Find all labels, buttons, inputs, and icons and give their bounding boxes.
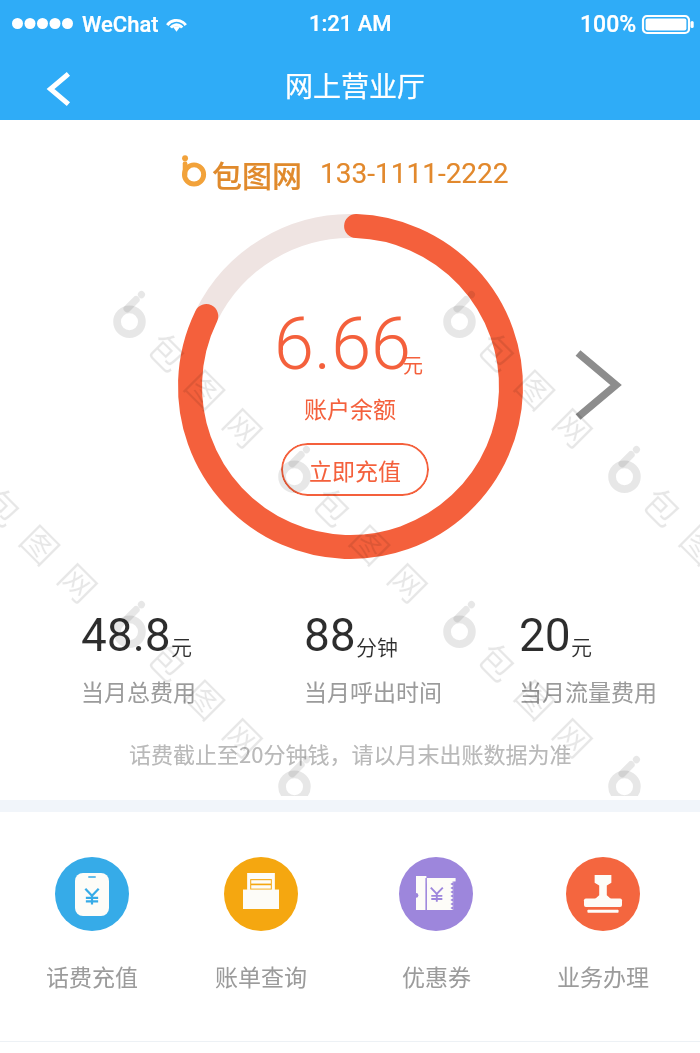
staticText: 包 (470, 319, 530, 379)
staticText: 图 (178, 667, 238, 727)
staticText: 88 (304, 608, 356, 662)
staticText: 包 (635, 784, 695, 796)
staticText: 话费截止至20分钟钱，请以月末出账数据为准 (129, 737, 572, 769)
staticText: 图 (178, 357, 238, 417)
button[interactable]: 立即充值 (281, 443, 429, 496)
staticText: 当月呼出时间 (304, 674, 442, 707)
staticText: 网 (216, 395, 276, 455)
staticText: 包 (470, 629, 530, 689)
staticText: WeChat (82, 12, 159, 34)
staticText: 包 (305, 784, 365, 796)
staticText: 包 (140, 629, 200, 689)
button[interactable]: 返回 (32, 63, 84, 115)
staticText: 1:21 AM (309, 11, 392, 37)
button[interactable]: 账单查询 (201, 857, 321, 992)
staticText: 包图网 (212, 152, 302, 195)
staticText: 账户余额 (304, 391, 396, 424)
staticText: 100% (580, 11, 637, 33)
staticText: 48.8 (81, 608, 171, 662)
staticText: 网 (546, 705, 606, 765)
staticText: 网上营业厅 (285, 65, 426, 106)
button[interactable]: 优惠券 (376, 857, 496, 992)
staticText: 元 (171, 631, 192, 661)
staticText: 分钟 (356, 631, 398, 661)
staticText: 20 (519, 608, 571, 662)
staticText: 元 (571, 631, 592, 661)
staticText: 网 (51, 550, 111, 610)
staticText: 网 (546, 395, 606, 455)
staticText: 网 (216, 705, 276, 765)
staticText: 包 (0, 474, 35, 534)
staticText: 话费充值 (46, 959, 138, 992)
staticText: 包 (635, 474, 695, 534)
staticText: 图 (343, 512, 403, 572)
staticText: 业务办理 (557, 959, 649, 992)
button[interactable]: 话费充值 (32, 857, 152, 992)
staticText: 立即充值 (309, 453, 401, 486)
button[interactable]: 下一页 (566, 341, 628, 429)
staticText: 图 (673, 512, 700, 572)
staticText: 图 (508, 357, 568, 417)
staticText: 网 (381, 550, 441, 610)
staticText: 包 (305, 474, 365, 534)
staticText: 图 (13, 512, 73, 572)
staticText: 优惠券 (402, 959, 471, 992)
staticText: 元 (403, 350, 423, 379)
staticText: 包 (140, 319, 200, 379)
button[interactable]: 业务办理 (543, 857, 663, 992)
staticText: 图 (508, 667, 568, 727)
staticText: 当月总费用 (81, 674, 196, 707)
staticText: 当月流量费用 (519, 674, 657, 707)
staticText: 6.66 (274, 302, 412, 386)
staticText: 133-1111-2222 (320, 157, 509, 190)
staticText: 账单查询 (215, 959, 307, 992)
